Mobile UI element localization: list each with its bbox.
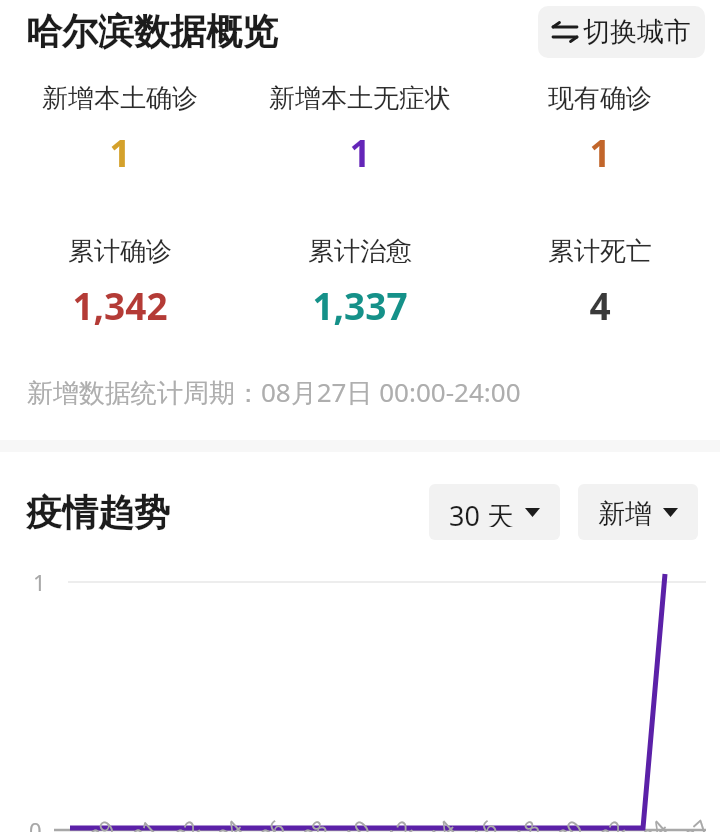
staticText: 新增本土无症状 <box>269 82 451 115</box>
staticText: 30 天 <box>449 497 514 527</box>
staticText: 1,342 <box>72 280 168 330</box>
other: 切换城市 <box>552 22 578 42</box>
staticText: 疫情趋势 <box>26 490 170 535</box>
staticText: 累计确诊 <box>68 235 172 268</box>
staticText: 累计治愈 <box>308 235 412 268</box>
staticText: 1 <box>349 127 371 177</box>
button[interactable]: 新增 <box>578 484 698 540</box>
staticText: 1,337 <box>312 280 408 330</box>
staticText: 哈尔滨数据概览 <box>26 9 278 54</box>
staticText: 新增数据统计周期：08月27日 00:00-24:00 <box>27 374 521 410</box>
button[interactable]: 30 天 <box>429 484 560 540</box>
button[interactable]: 切换城市 <box>538 6 705 58</box>
staticText: 1 <box>109 127 131 177</box>
staticText: 现有确诊 <box>548 82 652 115</box>
staticText: 切换城市 <box>583 15 691 49</box>
staticText: 新增本土确诊 <box>42 82 198 115</box>
staticText: 新增 <box>598 497 652 527</box>
staticText: 累计死亡 <box>548 235 652 268</box>
staticText: 4 <box>589 280 611 330</box>
staticText: 1 <box>589 127 611 177</box>
